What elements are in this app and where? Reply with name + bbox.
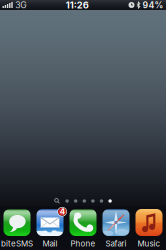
staticText: Mail [42,239,57,248]
staticText: 94% [142,0,163,10]
button[interactable]: Music [132,209,165,248]
staticText: 11:26 [66,0,89,11]
button[interactable]: Safari [99,209,132,248]
staticText: biteSMS [1,239,33,248]
staticText: 3G [15,0,26,10]
button[interactable]: 4 [33,209,66,248]
staticText: Safari [105,239,126,248]
button[interactable]: biteSMS [0,209,33,248]
button[interactable]: Phone [66,209,99,248]
staticText: Music [137,239,160,248]
staticText: 4 [60,207,65,216]
staticText: Phone [70,239,95,248]
